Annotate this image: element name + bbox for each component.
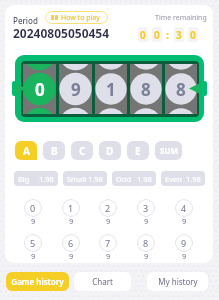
staticText: 9 [182,251,187,261]
staticText: How to play [61,13,100,23]
staticText: Time remaining [155,13,207,23]
staticText: : [166,27,170,42]
staticText: 8 [143,237,149,249]
staticText: 1.98 [88,174,103,184]
staticText: B [51,144,58,158]
staticText: 9 [182,216,187,226]
staticText: 20240805050454 [13,25,110,41]
staticText: C [79,144,86,158]
staticText: Game history [11,276,64,287]
staticText: 9 [69,216,74,226]
button[interactable]: B [43,141,65,160]
staticText: 8 [141,78,151,101]
staticText: 9 [31,216,36,226]
staticText: 3 [176,28,182,42]
button[interactable]: My history [147,272,208,291]
staticText: 8 [176,78,186,101]
other: Current position [15,83,26,94]
staticText: 9 [106,216,111,226]
button[interactable]: 7 [97,233,119,260]
staticText: 5 [30,237,36,249]
button[interactable]: 8 [135,233,157,260]
button[interactable]: SUM [155,141,182,160]
button[interactable]: Even [161,171,205,186]
staticText: Period [13,15,38,26]
button[interactable]: 5 [22,233,44,260]
staticText: 1 [106,78,116,101]
staticText: 9 [106,251,111,261]
button[interactable]: 9 [173,233,195,260]
button[interactable]: Big [14,171,58,186]
staticText: A [23,144,30,158]
staticText: Even [165,174,182,184]
staticText: My history [158,276,198,287]
staticText: 6 [68,237,74,249]
button[interactable]: Game history [6,272,69,291]
staticText: 0 [140,28,146,42]
button[interactable]: A [15,141,37,160]
button[interactable]: How to play [45,11,108,24]
staticText: D [106,144,114,158]
button[interactable]: 2 [97,198,119,225]
button[interactable]: 0 [22,198,44,225]
staticText: 2 [105,202,111,214]
staticText: 9 [69,251,74,261]
staticText: E [135,144,141,158]
button[interactable]: 3 [135,198,157,225]
staticText: 9 [144,251,149,261]
button[interactable]: Small [63,171,107,186]
staticText: 9 [181,237,187,249]
staticText: 0 [190,28,196,42]
button[interactable]: 4 [173,198,195,225]
staticText: 1.98 [186,174,201,184]
button[interactable]: D [99,141,121,160]
staticText: 1.98 [39,174,54,184]
staticText: Chart [92,276,113,287]
staticText: 9 [144,216,149,226]
button[interactable]: Odd [112,171,156,186]
staticText: Big [18,174,30,184]
button[interactable]: 1 [60,198,82,225]
staticText: 1.98 [137,174,152,184]
button[interactable]: 6 [60,233,82,260]
staticText: 0 [35,78,45,101]
staticText: Small [67,174,87,184]
staticText: 9 [31,251,36,261]
staticText: 9 [71,78,81,101]
button[interactable]: E [127,141,149,160]
staticText: SUM [160,145,178,156]
staticText: 0 [154,28,160,42]
staticText: 1 [68,202,74,214]
staticText: 4 [181,202,187,214]
staticText: 7 [105,237,111,249]
button[interactable]: C [71,141,93,160]
staticText: 3 [143,202,149,214]
staticText: 0 [30,202,36,214]
button[interactable]: Chart [74,272,131,291]
staticText: Odd [116,174,132,184]
